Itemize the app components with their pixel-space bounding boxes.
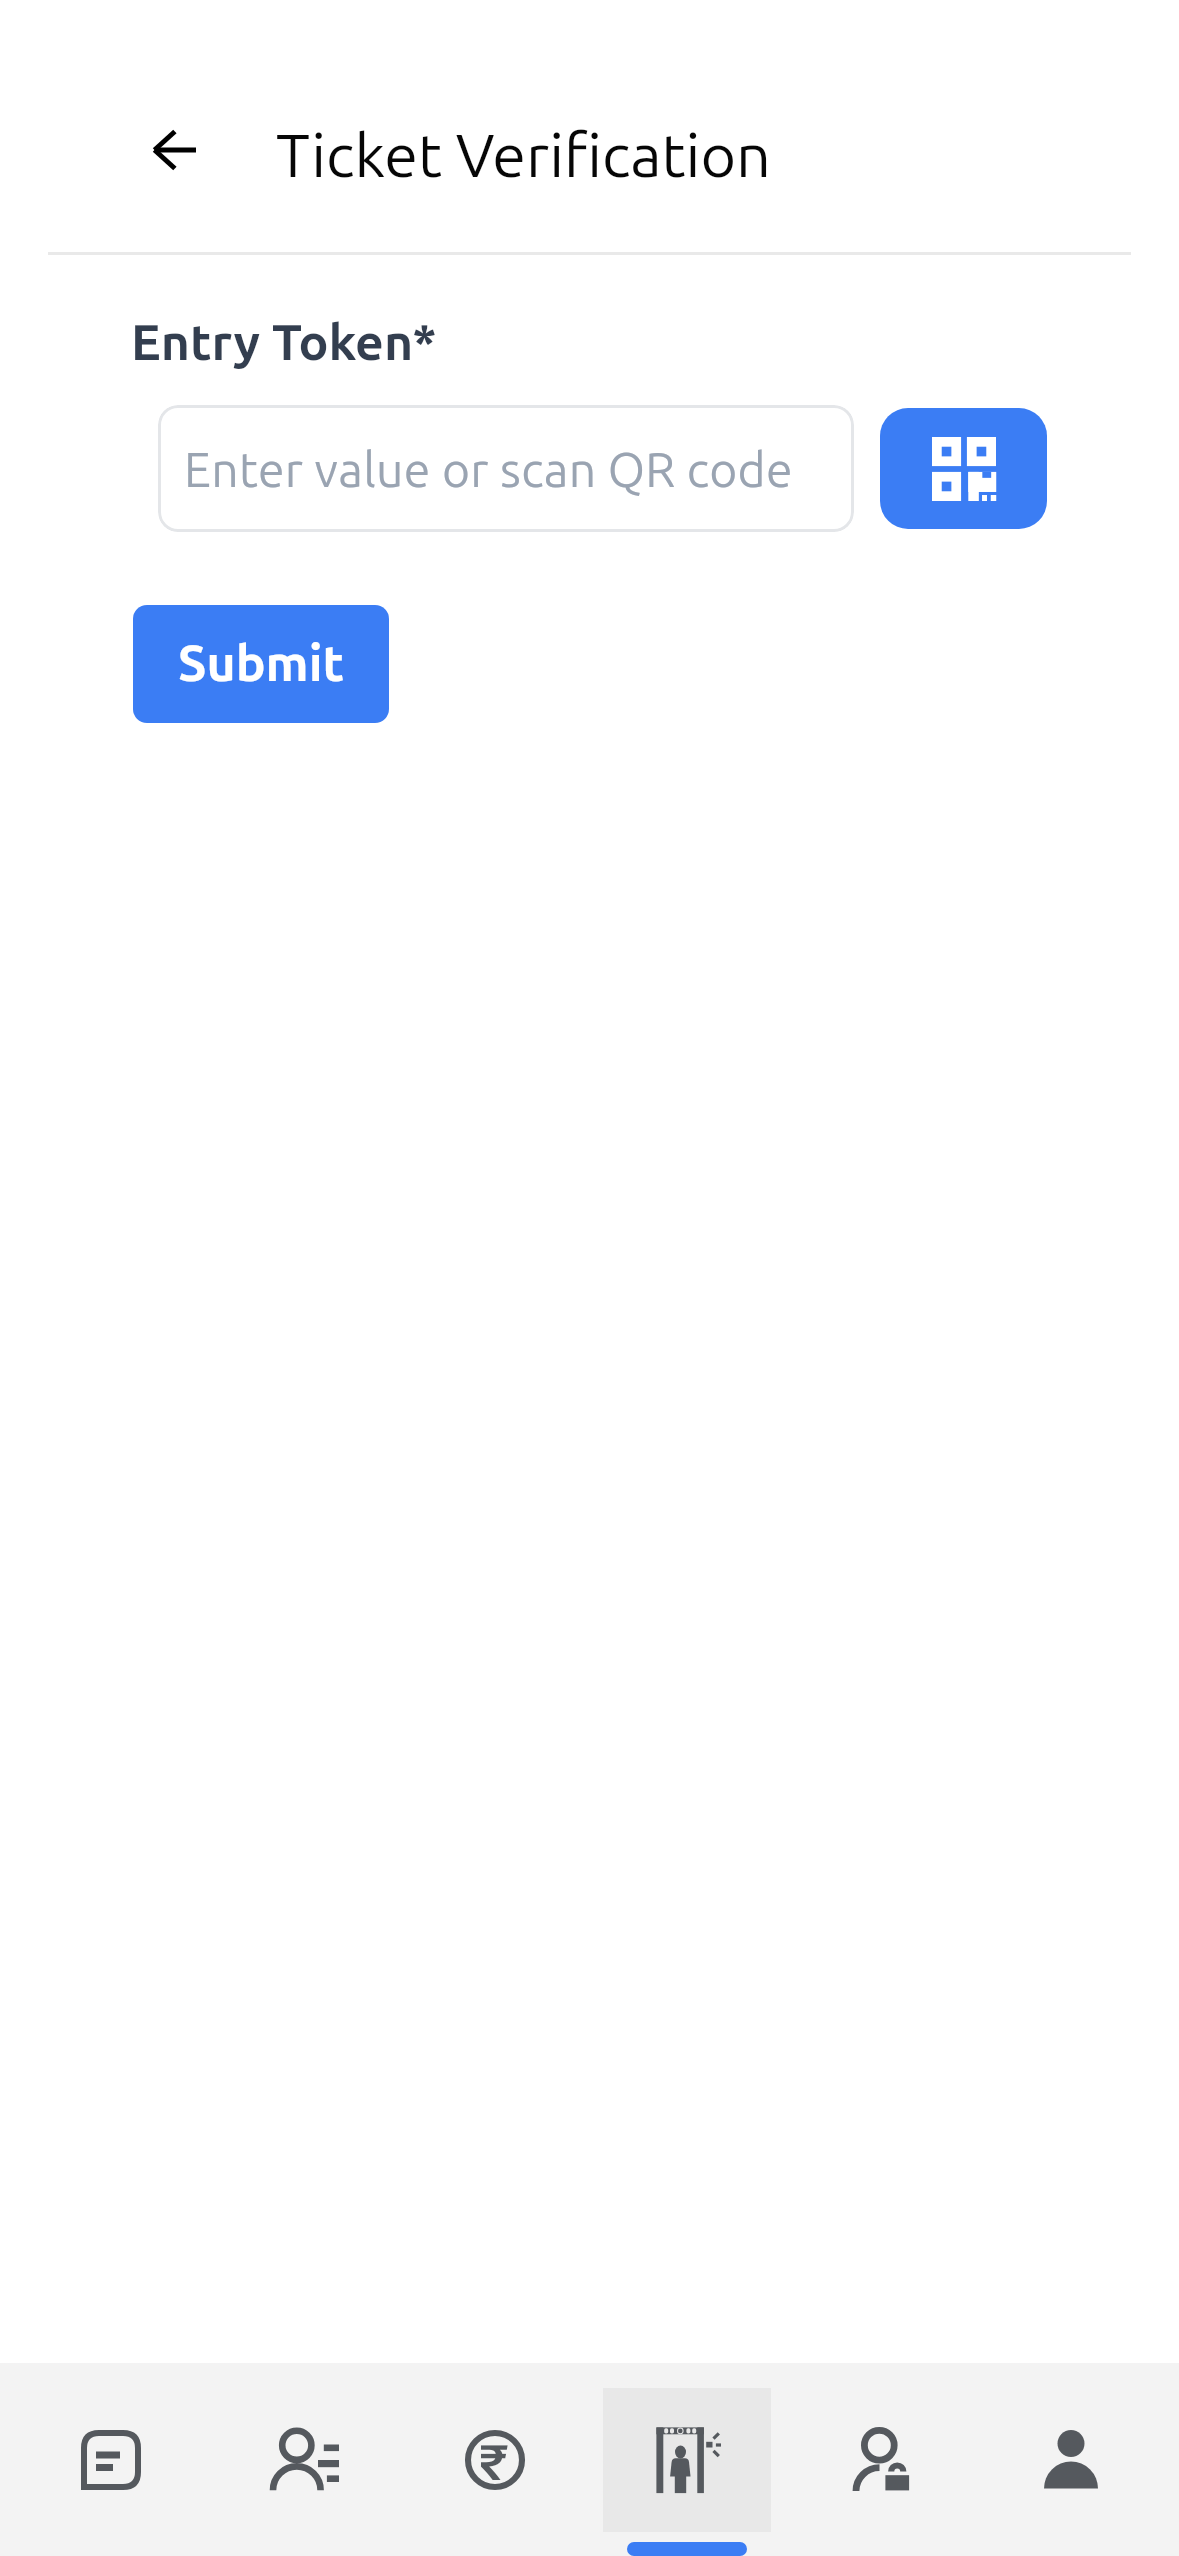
button[interactable]: Ticket Verification bbox=[591, 2363, 783, 2556]
button[interactable]: Members bbox=[207, 2363, 399, 2556]
staticText: Entry Token* bbox=[131, 313, 437, 369]
button[interactable]: Profile bbox=[975, 2363, 1167, 2556]
staticText: Ticket Verification bbox=[276, 120, 771, 188]
staticText: ₹ bbox=[480, 2433, 509, 2489]
button[interactable]: Scan QR code bbox=[880, 408, 1047, 529]
button[interactable]: Notes bbox=[15, 2363, 207, 2556]
staticText: Submit bbox=[178, 634, 345, 690]
button[interactable]: Back bbox=[128, 104, 220, 196]
button[interactable]: Payments bbox=[399, 2363, 591, 2556]
button[interactable]: Access control bbox=[783, 2363, 975, 2556]
staticText: Enter value or scan QR code bbox=[184, 442, 793, 496]
button[interactable]: Enter value or scan QR code bbox=[158, 405, 854, 532]
button[interactable]: Submit bbox=[133, 605, 389, 723]
